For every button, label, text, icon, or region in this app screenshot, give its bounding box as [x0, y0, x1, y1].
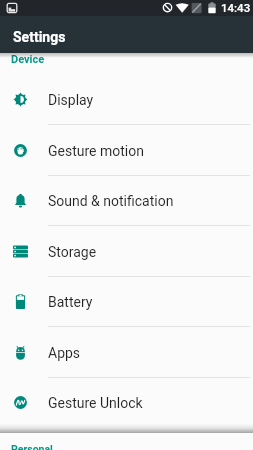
button[interactable]: Gesture Unlock — [0, 378, 253, 427]
staticText: Sound & notification — [48, 193, 174, 209]
button[interactable]: Sound & notification — [0, 176, 253, 225]
staticText: Gesture motion — [48, 143, 144, 159]
staticText: Personal — [11, 443, 53, 450]
button[interactable]: Storage — [0, 227, 253, 276]
staticText: Apps — [48, 345, 81, 361]
button[interactable]: Settings — [0, 16, 253, 53]
button[interactable]: Display — [0, 75, 253, 124]
button[interactable]: Apps — [0, 328, 253, 377]
staticText: Settings — [13, 29, 66, 45]
staticText: Storage — [48, 244, 97, 260]
staticText: Device — [11, 53, 45, 66]
button[interactable]: Gesture motion — [0, 126, 253, 175]
button[interactable]: Battery — [0, 277, 253, 326]
staticText: Battery — [48, 294, 93, 310]
staticText: Gesture Unlock — [48, 395, 143, 411]
staticText: Display — [48, 92, 94, 108]
staticText: 14:43 — [221, 1, 251, 14]
